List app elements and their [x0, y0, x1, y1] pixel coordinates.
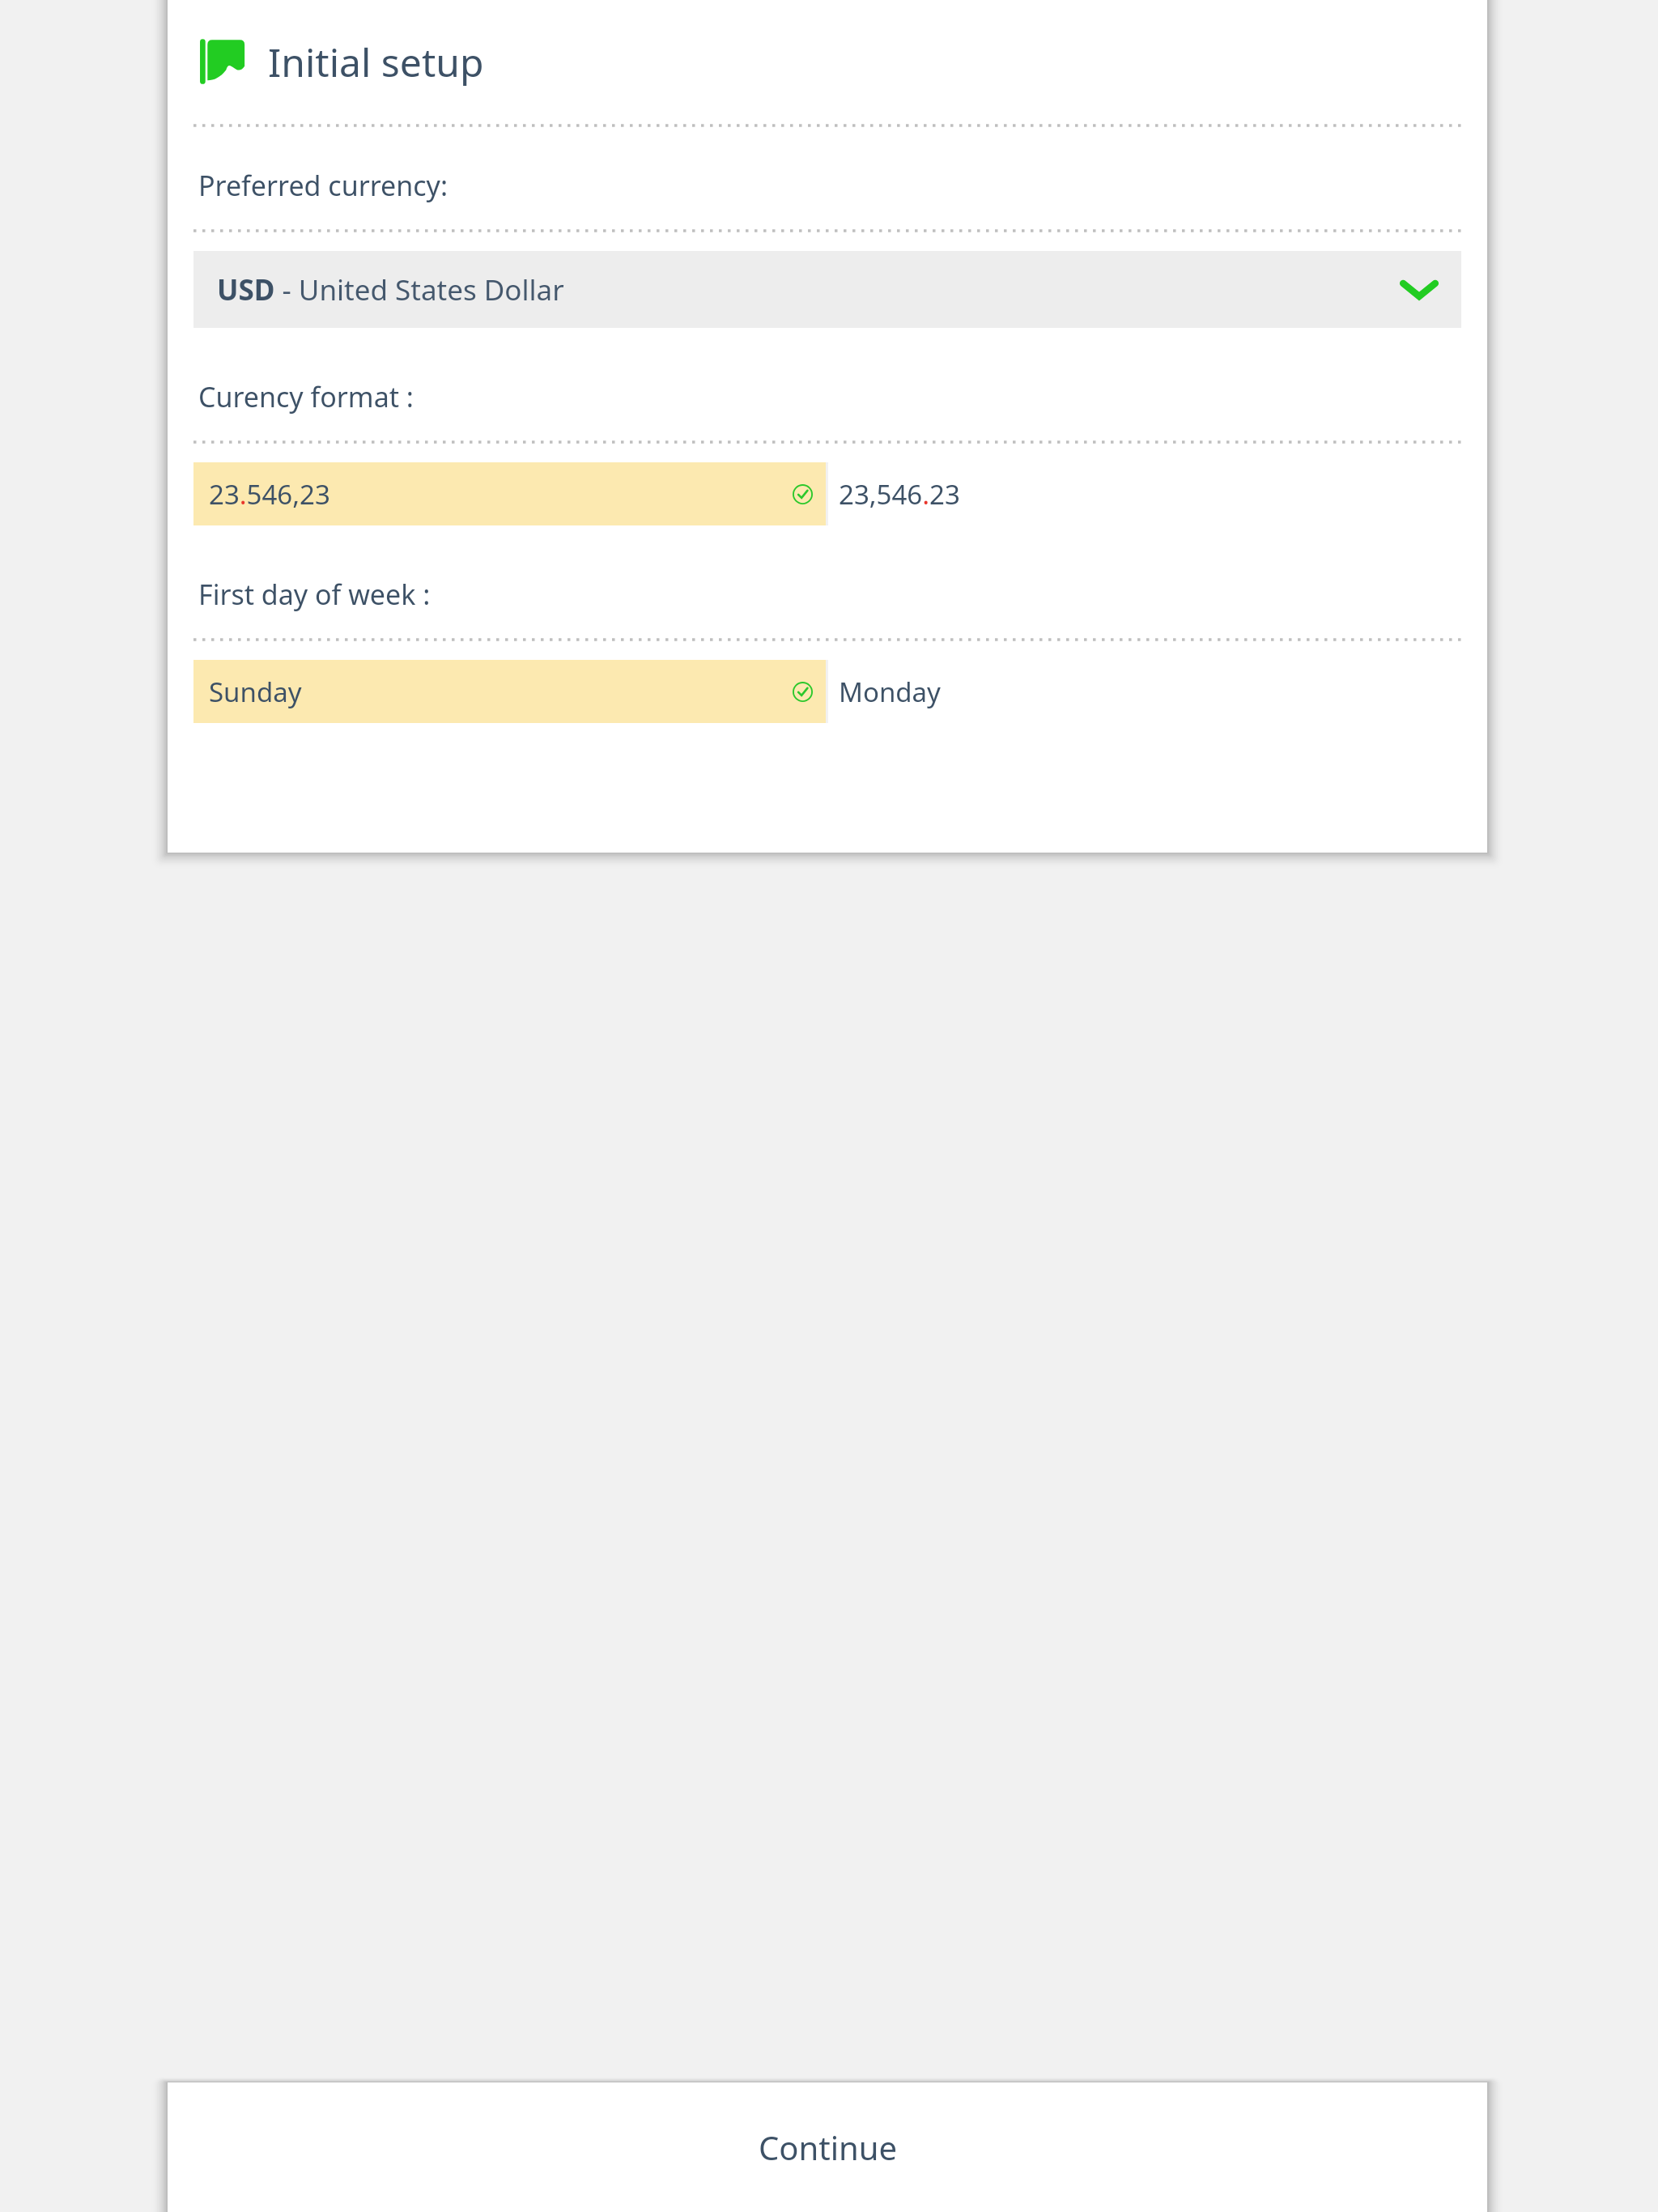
staticText: Curency format :: [198, 378, 414, 415]
other: Open currency list: [1398, 274, 1440, 306]
button[interactable]: 23.546,23: [193, 462, 826, 525]
button[interactable]: Continue: [168, 2082, 1487, 2212]
staticText: Initial setup: [268, 36, 484, 88]
staticText: Continue: [759, 2125, 897, 2169]
button[interactable]: USD - United States Dollar: [193, 251, 1461, 328]
staticText: Sunday: [209, 674, 302, 710]
staticText: 23,546.23: [839, 476, 960, 513]
staticText: First day of week :: [198, 576, 431, 613]
staticText: Monday: [839, 674, 941, 710]
staticText: USD - United States Dollar: [217, 270, 1398, 309]
button[interactable]: 23,546.23: [828, 462, 1461, 525]
staticText: 23.546,23: [209, 476, 330, 513]
button[interactable]: Sunday: [193, 660, 826, 723]
button[interactable]: Monday: [828, 660, 1461, 723]
staticText: Preferred currency:: [198, 167, 449, 204]
